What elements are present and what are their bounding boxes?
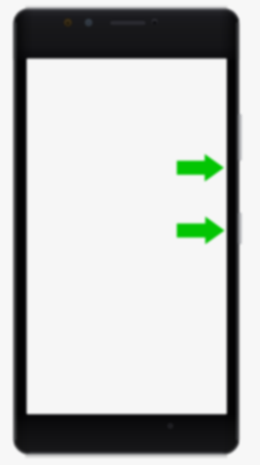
button[interactable]: Phone side buttons diagram <box>0 0 260 465</box>
